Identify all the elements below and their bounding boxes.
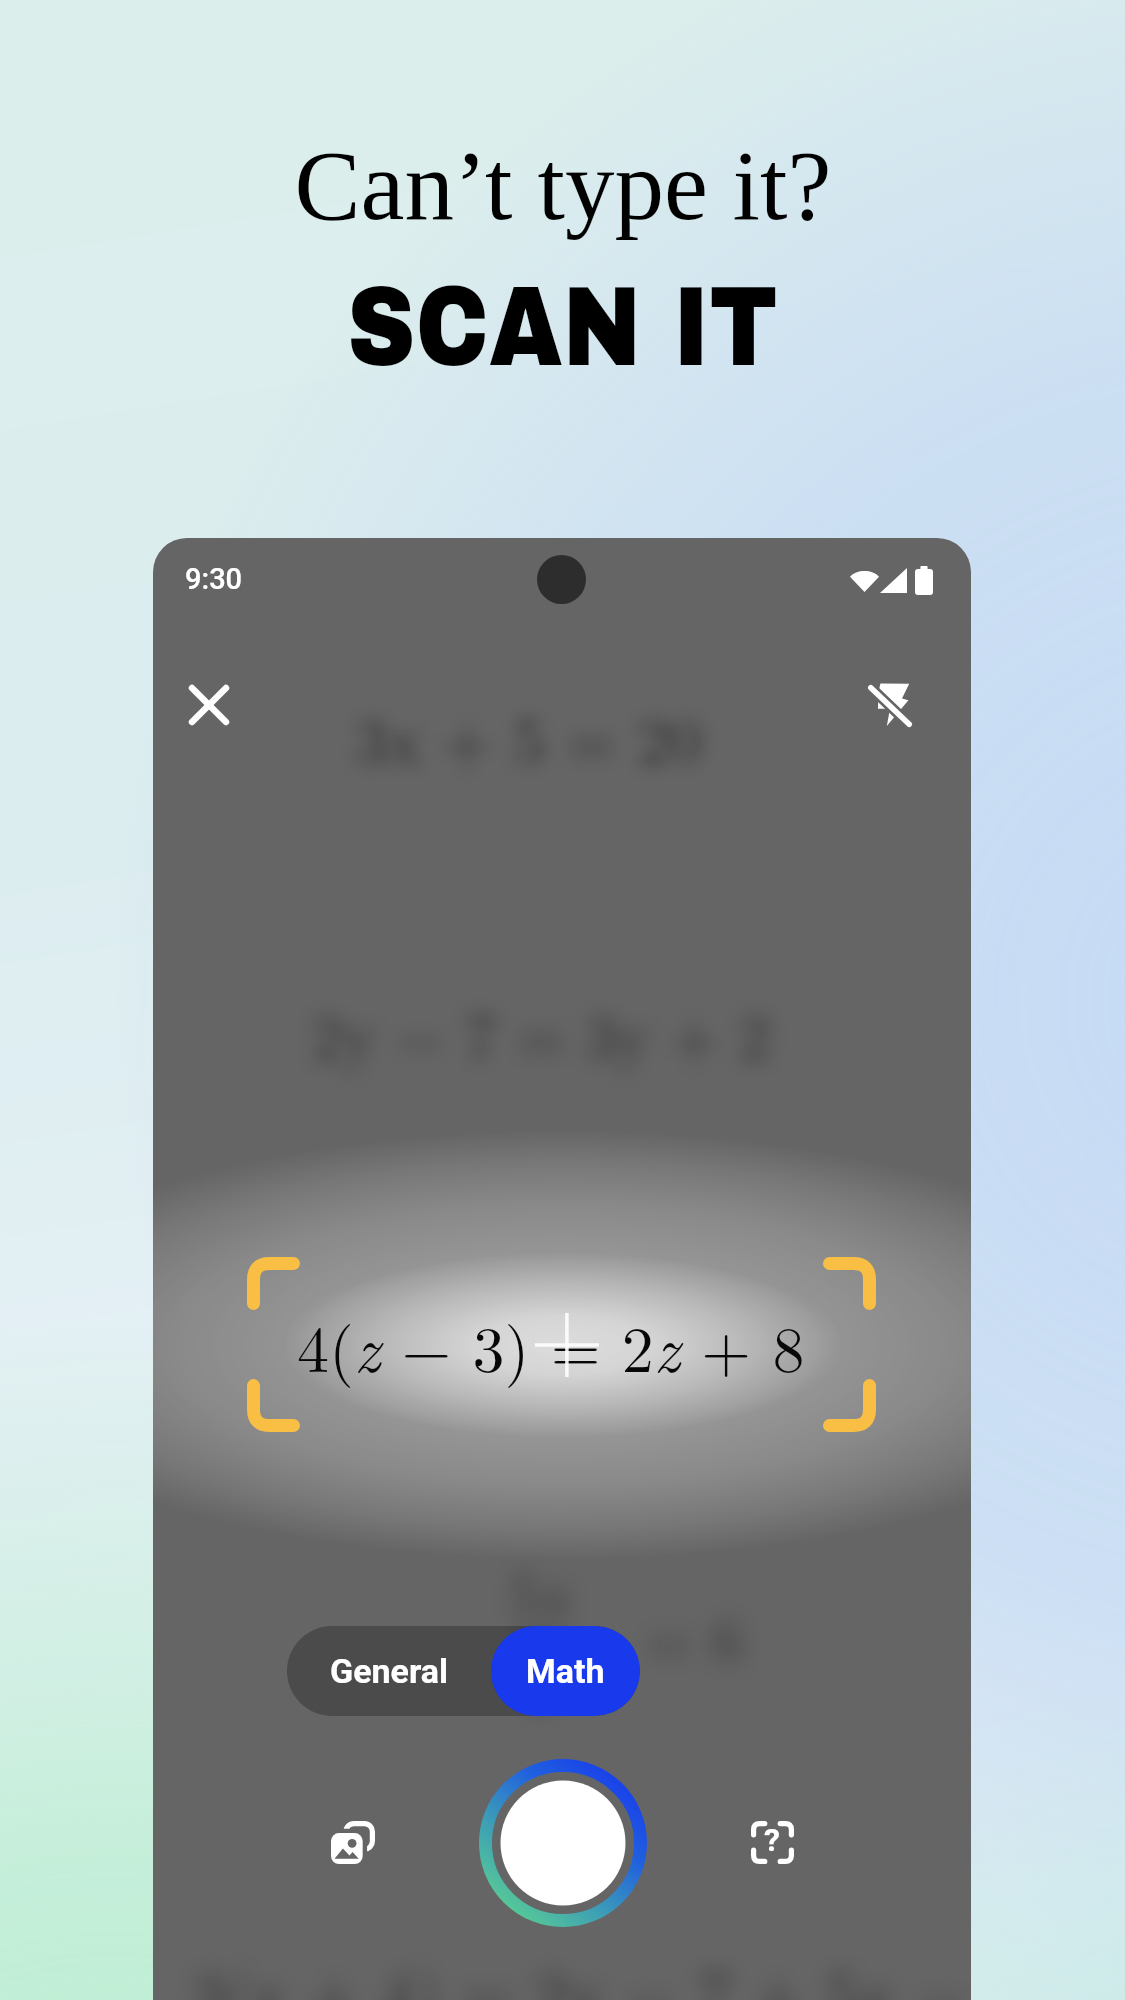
staticText: Math (526, 1651, 605, 1691)
staticText: 4(z − 3) = 2z + 8 (297, 1300, 805, 1391)
staticText: 2 (526, 1638, 556, 1723)
staticText: 3(x + 4) = 2x − 7 + 5x − 1 (192, 1944, 971, 2000)
button[interactable]: General (287, 1626, 491, 1716)
staticText: Can’t type it? (294, 131, 832, 241)
staticText: 2y − 7 = 3y + 2 (312, 988, 771, 1076)
button[interactable]: Gallery (305, 1794, 401, 1890)
button[interactable]: Close (163, 659, 255, 751)
staticText: ? (764, 1821, 780, 1859)
staticText: = 6 (626, 1593, 743, 1678)
button[interactable]: Math (491, 1626, 640, 1716)
staticText: SCAN IT (347, 266, 778, 389)
button[interactable]: Shutter (463, 1743, 663, 1943)
button[interactable]: Flash off (844, 658, 936, 750)
button[interactable]: Scan help (724, 1794, 820, 1890)
staticText: 5x (510, 1548, 572, 1633)
staticText: 9:30 (185, 562, 243, 596)
staticText: General (330, 1651, 449, 1691)
staticText: 3x + 5 = 20 (355, 691, 702, 782)
